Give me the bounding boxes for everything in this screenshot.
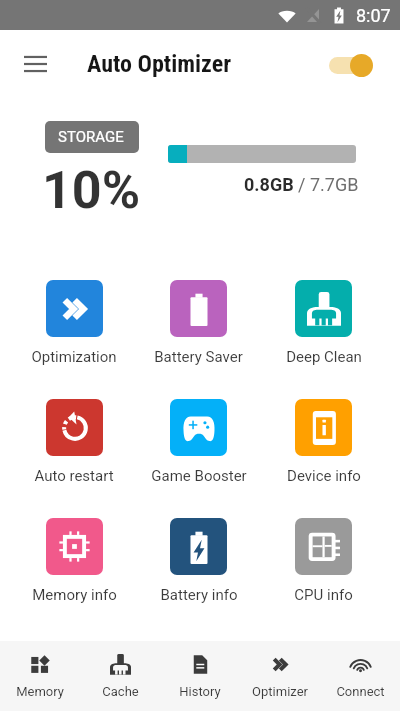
button[interactable]: Device info: [261, 399, 386, 485]
staticText: 10%: [42, 160, 141, 221]
staticText: Auto restart: [34, 467, 114, 485]
button[interactable]: Battery Saver: [136, 280, 261, 366]
staticText: Auto Optimizer: [87, 50, 232, 78]
staticText: Optimization: [31, 348, 117, 366]
staticText: Battery info: [160, 586, 238, 604]
button[interactable]: Optimization: [12, 280, 136, 366]
staticText: CPU info: [294, 586, 353, 604]
staticText: Device info: [287, 467, 361, 485]
button[interactable]: Memory: [0, 641, 80, 699]
staticText: Game Booster: [151, 467, 247, 485]
button[interactable]: Deep Clean: [261, 280, 386, 366]
staticText: History: [179, 684, 221, 699]
button[interactable]: Connect: [320, 641, 400, 699]
staticText: Deep Clean: [286, 348, 362, 366]
staticText: STORAGE: [58, 128, 124, 146]
staticText: Memory: [16, 684, 64, 699]
button[interactable]: Open navigation menu: [17, 46, 53, 82]
button[interactable]: Game Booster: [136, 399, 261, 485]
staticText: 8:07: [356, 5, 391, 26]
button[interactable]: Auto optimize toggle, on: [322, 48, 374, 82]
button[interactable]: Optimizer: [240, 641, 320, 699]
staticText: Battery Saver: [154, 348, 243, 366]
button[interactable]: Memory info: [12, 518, 136, 604]
staticText: Memory info: [32, 586, 117, 604]
staticText: Optimizer: [252, 684, 308, 699]
staticText: 0.8GB / 7.7GB: [244, 174, 359, 195]
button[interactable]: History: [160, 641, 240, 699]
button[interactable]: Battery info: [136, 518, 261, 604]
staticText: Cache: [102, 684, 139, 699]
staticText: Connect: [336, 684, 385, 699]
button[interactable]: CPU info: [261, 518, 386, 604]
button[interactable]: Auto restart: [12, 399, 136, 485]
button[interactable]: Cache: [80, 641, 160, 699]
